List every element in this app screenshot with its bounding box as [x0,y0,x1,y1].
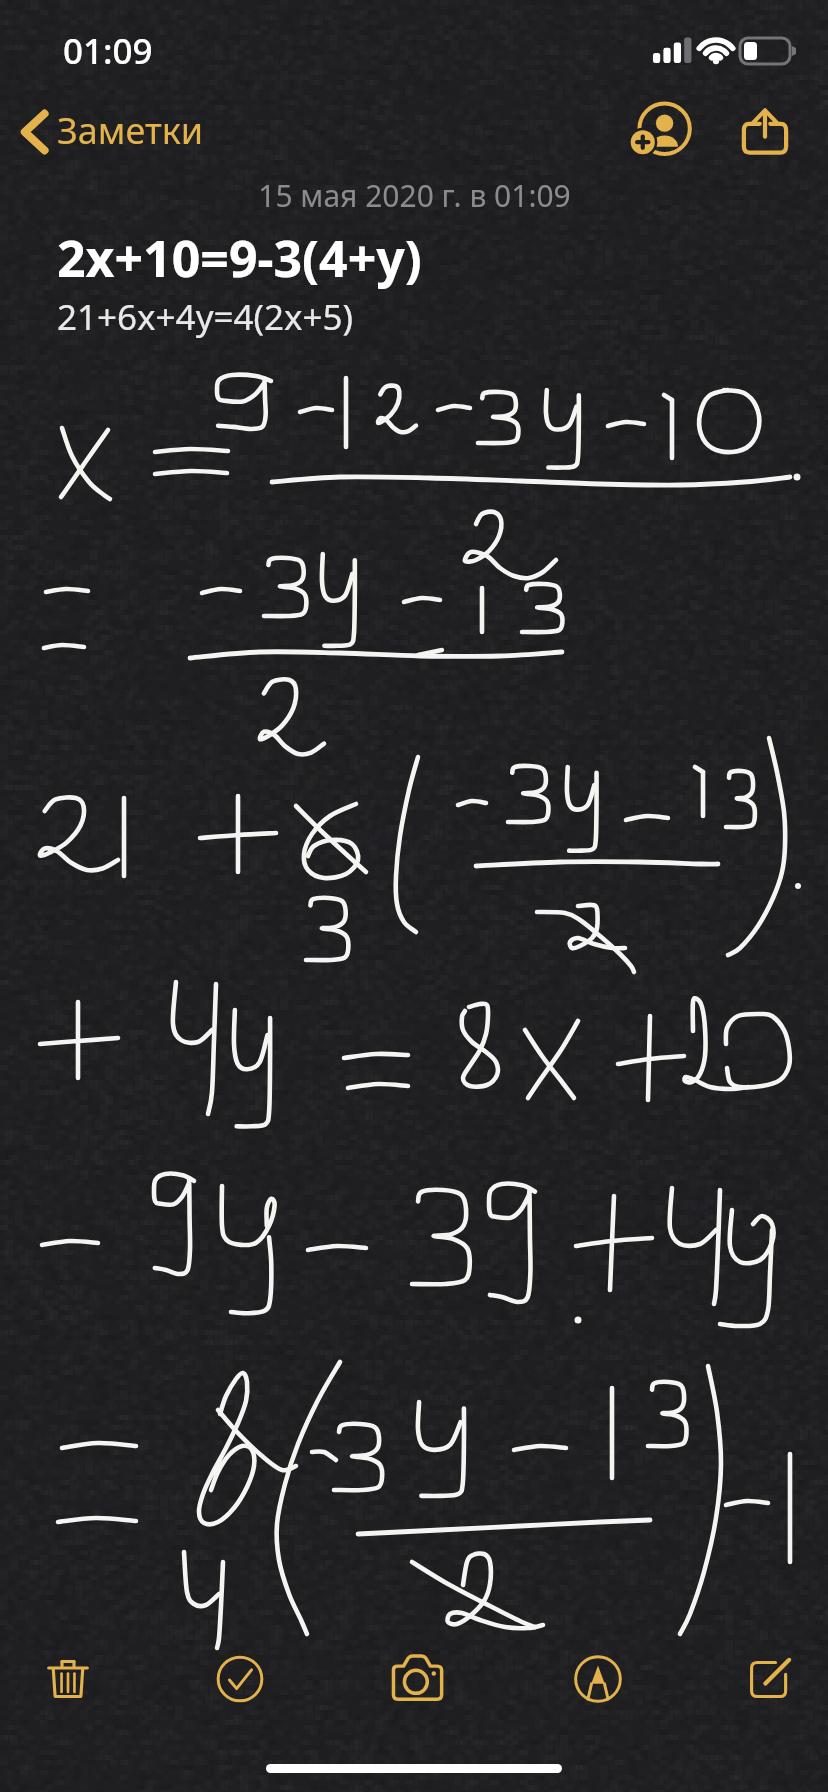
button[interactable]: Camera [375,1637,459,1721]
staticText: 21+6x+4y=4(2x+5) [57,293,354,341]
button[interactable]: Add people [621,93,697,169]
button[interactable]: Compose [728,1637,812,1721]
button[interactable]: Checklist [198,1637,282,1721]
staticText: Заметки [57,106,204,155]
staticText: 2x+10=9-3(4+y) [57,224,422,292]
button[interactable]: Delete [26,1637,110,1721]
button[interactable]: Share [727,93,803,169]
button[interactable]: Markup [556,1637,640,1721]
button[interactable]: Заметки [20,106,204,157]
staticText: 15 мая 2020 г. в 01:09 [258,175,571,216]
staticText: 01:09 [63,27,153,75]
